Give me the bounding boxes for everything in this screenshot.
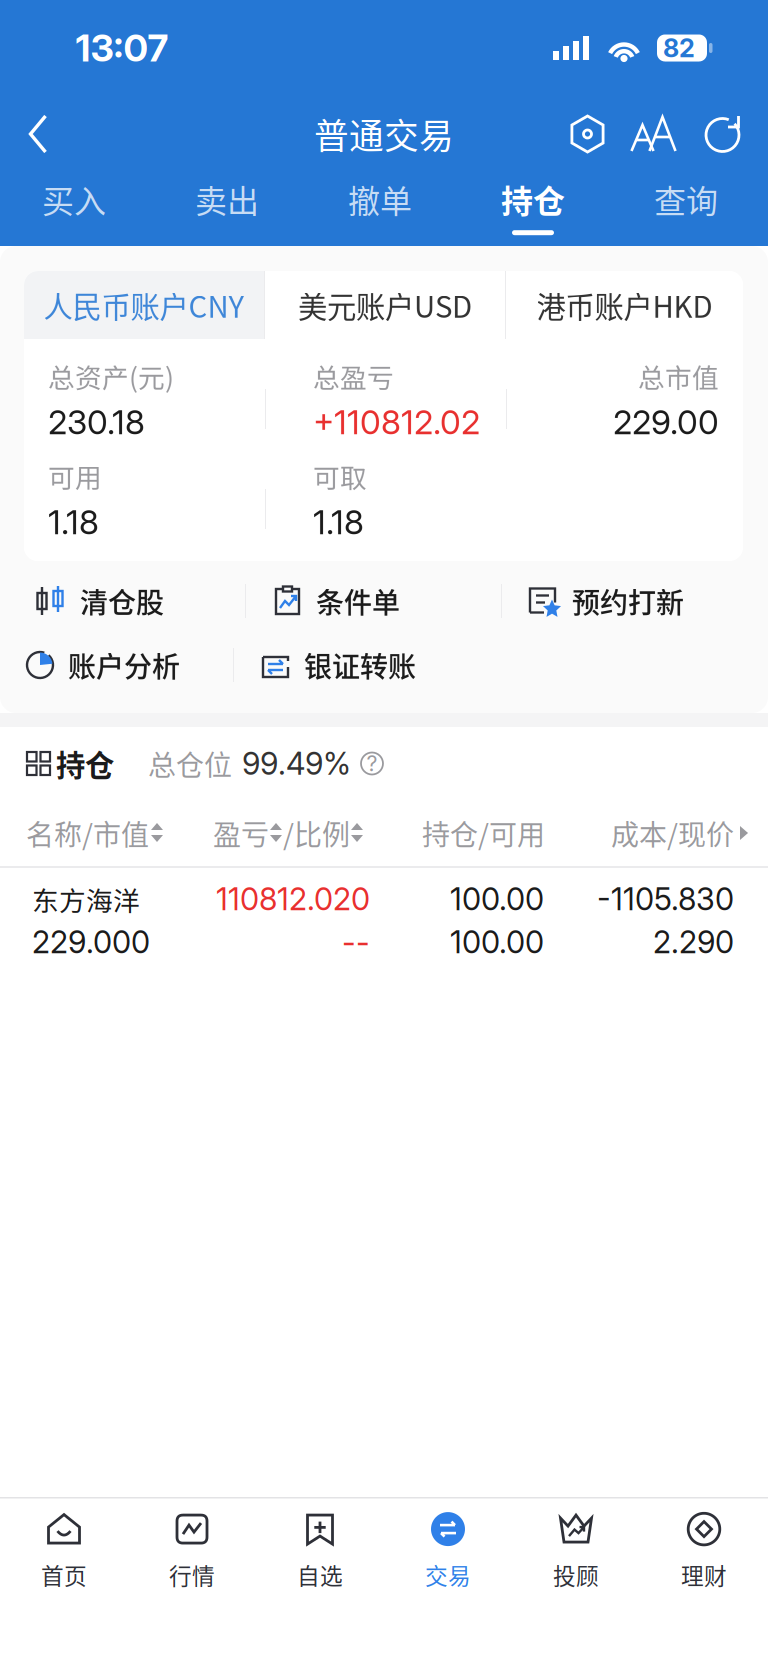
staticText: 82 — [663, 33, 695, 63]
staticText: 总市值 — [638, 357, 719, 395]
staticText: 2.290 — [653, 923, 734, 960]
staticText: 撤单 — [348, 176, 412, 222]
staticText: 美元账户USD — [298, 284, 472, 326]
button[interactable]: 持仓 — [456, 172, 609, 242]
button[interactable]: Text size — [606, 106, 678, 162]
staticText: ? — [366, 751, 377, 776]
staticText: -1105.830 — [597, 880, 734, 917]
staticText: 买入 — [42, 176, 106, 222]
staticText: 银证转账 — [304, 645, 416, 685]
staticText: -- — [342, 923, 370, 960]
staticText: 东方海洋 — [32, 880, 140, 918]
staticText: 13:07 — [75, 25, 168, 71]
button[interactable]: 自选 — [256, 1498, 384, 1598]
staticText: 229.00 — [613, 402, 719, 442]
button[interactable]: 银证转账 — [260, 633, 489, 697]
staticText: 持仓 — [501, 176, 565, 222]
staticText: 首页 — [41, 1558, 87, 1591]
button[interactable]: Refresh — [678, 105, 768, 163]
button[interactable]: 买入 — [0, 172, 150, 242]
staticText: 清仓股 — [80, 581, 164, 621]
button[interactable]: 港币账户HKD — [506, 271, 743, 339]
staticText: 总仓位 — [148, 743, 232, 784]
button[interactable]: 投顾 — [512, 1498, 640, 1598]
staticText: 持仓/可用 — [422, 813, 545, 853]
button[interactable]: 卖出 — [150, 172, 303, 242]
staticText: 理财 — [681, 1558, 727, 1591]
staticText: 100.00 — [450, 923, 544, 960]
staticText: 港币账户HKD — [536, 284, 712, 326]
staticText: 持仓 — [56, 742, 114, 785]
button[interactable]: 理财 — [640, 1498, 768, 1598]
button[interactable]: 行情 — [128, 1498, 256, 1598]
button[interactable]: 查询 — [609, 172, 762, 242]
staticText: 自选 — [297, 1558, 343, 1591]
staticText: 230.18 — [48, 402, 145, 442]
button[interactable]: Account — [568, 105, 606, 163]
staticText: 229.000 — [32, 923, 150, 960]
staticText: 成本/现价 — [611, 813, 734, 853]
button[interactable]: 人民币账户CNY — [24, 271, 264, 339]
staticText: 100.00 — [450, 880, 544, 917]
staticText: 人民币账户CNY — [43, 284, 244, 326]
button[interactable]: Back — [0, 103, 79, 165]
staticText: 1.18 — [48, 502, 99, 542]
staticText: 总盈亏 — [313, 357, 394, 395]
staticText: 总资产(元) — [48, 357, 174, 395]
staticText: 名称/市值 — [26, 813, 149, 853]
staticText: 交易 — [425, 1558, 471, 1591]
staticText: 条件单 — [316, 581, 400, 621]
button[interactable]: 条件单 — [272, 569, 501, 633]
button[interactable]: 清仓股 — [36, 569, 245, 633]
staticText: /比例 — [283, 813, 350, 853]
staticText: 普通交易 — [314, 109, 454, 159]
staticText: 行情 — [169, 1558, 215, 1591]
button[interactable]: 东方海洋 — [0, 868, 768, 972]
staticText: 投顾 — [553, 1558, 599, 1591]
staticText: 可取 — [313, 457, 367, 495]
staticText: 预约打新 — [572, 581, 684, 621]
staticText: 1.18 — [313, 502, 364, 542]
staticText: 110812.020 — [216, 880, 370, 917]
staticText: 可用 — [48, 457, 102, 495]
staticText: 盈亏 — [213, 813, 269, 853]
staticText: 查询 — [654, 176, 718, 222]
button[interactable]: 预约打新 — [528, 569, 756, 633]
button[interactable]: 撤单 — [303, 172, 456, 242]
button[interactable]: 账户分析 — [24, 633, 233, 697]
staticText: 99.49% — [242, 745, 351, 782]
button[interactable]: 首页 — [0, 1498, 128, 1598]
button[interactable]: 美元账户USD — [265, 271, 505, 339]
button[interactable]: 交易 — [384, 1498, 512, 1598]
staticText: +110812.02 — [313, 402, 480, 442]
staticText: 账户分析 — [68, 645, 180, 685]
staticText: 卖出 — [195, 176, 259, 222]
